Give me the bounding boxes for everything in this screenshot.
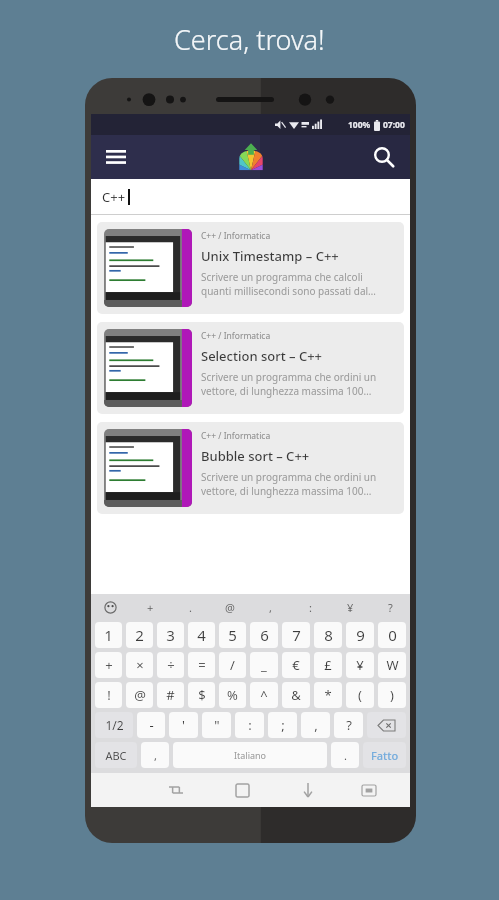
button[interactable]: Search xyxy=(366,139,402,175)
staticText: Scrivere un programma che calcoli xyxy=(201,270,363,284)
staticText: , xyxy=(269,600,272,615)
button[interactable]: 1/2 xyxy=(95,712,133,738)
staticText: : xyxy=(309,600,312,615)
button[interactable]: ? xyxy=(370,594,410,620)
button[interactable]: @ xyxy=(126,682,153,708)
staticText: + xyxy=(105,656,113,674)
button[interactable]: 4 xyxy=(188,622,215,648)
button[interactable]: ) xyxy=(378,682,406,708)
button[interactable]: 3 xyxy=(157,622,184,648)
button[interactable]: . xyxy=(170,594,210,620)
staticText: - xyxy=(149,716,154,734)
button[interactable]: " xyxy=(202,712,231,738)
staticText: ABC xyxy=(105,748,127,763)
button[interactable]: ; xyxy=(268,712,297,738)
button[interactable]: ! xyxy=(95,682,122,708)
button[interactable]: ABC xyxy=(95,742,137,768)
staticText: ) xyxy=(390,686,394,704)
button[interactable]: _ xyxy=(250,652,278,678)
button[interactable]: - xyxy=(137,712,165,738)
staticText: $ xyxy=(198,686,206,704)
button[interactable]: Menu xyxy=(98,139,134,175)
staticText: ^ xyxy=(260,686,268,704)
button[interactable]: 8 xyxy=(314,622,342,648)
staticText: C++ xyxy=(102,188,126,206)
button[interactable]: 1 xyxy=(95,622,122,648)
button[interactable]: Keyboard settings xyxy=(341,773,397,807)
button[interactable]: £ xyxy=(314,652,342,678)
button[interactable]: : xyxy=(290,594,330,620)
staticText: W xyxy=(386,656,399,674)
staticText: 1 xyxy=(104,625,113,645)
staticText: " xyxy=(214,716,220,734)
staticText: : xyxy=(248,716,252,734)
staticText: C++ / Informatica xyxy=(201,230,271,242)
button[interactable]: ¥ xyxy=(346,652,374,678)
button[interactable]: : xyxy=(235,712,264,738)
button[interactable]: $ xyxy=(188,682,215,708)
button[interactable]: # xyxy=(157,682,184,708)
button[interactable]: ÷ xyxy=(157,652,184,678)
button[interactable]: % xyxy=(219,682,246,708)
button[interactable]: = xyxy=(188,652,215,678)
staticText: ¥ xyxy=(347,600,354,615)
staticText: £ xyxy=(324,656,332,674)
button[interactable]: × xyxy=(126,652,153,678)
staticText: 8 xyxy=(324,625,333,645)
staticText: € xyxy=(292,656,300,674)
button[interactable]: ^ xyxy=(250,682,278,708)
button[interactable]: € xyxy=(282,652,310,678)
button[interactable]: . xyxy=(331,742,359,768)
staticText: ; xyxy=(281,716,285,734)
button[interactable]: @ xyxy=(210,594,250,620)
staticText: Unix Timestamp – C++ xyxy=(201,247,339,265)
button[interactable]: & xyxy=(282,682,310,708)
button[interactable]: 5 xyxy=(219,622,246,648)
button[interactable]: C++ / Informatica xyxy=(97,322,404,414)
button[interactable]: , xyxy=(250,594,290,620)
button[interactable]: ? xyxy=(334,712,363,738)
button[interactable]: C++ / Informatica xyxy=(97,222,404,314)
staticText: vettore, di lunghezza massima 100… xyxy=(201,384,372,398)
button[interactable]: + xyxy=(130,594,170,620)
staticText: C++ / Informatica xyxy=(201,430,271,442)
staticText: Scrivere un programma che ordini un xyxy=(201,370,377,384)
staticText: # xyxy=(166,686,175,704)
button[interactable]: C++ xyxy=(91,179,410,214)
button[interactable]: Italiano xyxy=(173,742,327,768)
button[interactable]: ' xyxy=(169,712,198,738)
button[interactable]: Hide keyboard xyxy=(275,773,341,807)
button[interactable]: Fatto xyxy=(363,742,406,768)
button[interactable]: 7 xyxy=(282,622,310,648)
staticText: , xyxy=(314,716,318,734)
button[interactable]: 0 xyxy=(378,622,406,648)
staticText: 4 xyxy=(197,625,206,645)
staticText: / xyxy=(230,656,235,674)
staticText: Italiano xyxy=(234,749,267,761)
button[interactable]: Emoji xyxy=(91,594,130,620)
button[interactable]: + xyxy=(95,652,122,678)
button[interactable]: , xyxy=(301,712,330,738)
button[interactable]: ¥ xyxy=(330,594,370,620)
staticText: 3 xyxy=(166,625,175,645)
staticText: . xyxy=(344,748,347,763)
staticText: × xyxy=(136,656,144,674)
button[interactable]: 9 xyxy=(346,622,374,648)
button[interactable]: C++ / Informatica xyxy=(97,422,404,514)
button[interactable]: Recents xyxy=(142,773,209,807)
button[interactable]: * xyxy=(314,682,342,708)
staticText: C++ / Informatica xyxy=(201,330,271,342)
staticText: = xyxy=(198,656,206,674)
button[interactable]: W xyxy=(378,652,406,678)
button[interactable]: / xyxy=(219,652,246,678)
button[interactable]: Home xyxy=(209,773,275,807)
staticText: Selection sort – C++ xyxy=(201,347,323,365)
button[interactable]: ( xyxy=(346,682,374,708)
button[interactable]: 2 xyxy=(126,622,153,648)
staticText: @ xyxy=(134,686,146,704)
staticText: 5 xyxy=(228,625,237,645)
button[interactable]: 6 xyxy=(250,622,278,648)
button[interactable]: Backspace xyxy=(367,712,406,738)
staticText: & xyxy=(291,686,301,704)
button[interactable]: , xyxy=(141,742,169,768)
